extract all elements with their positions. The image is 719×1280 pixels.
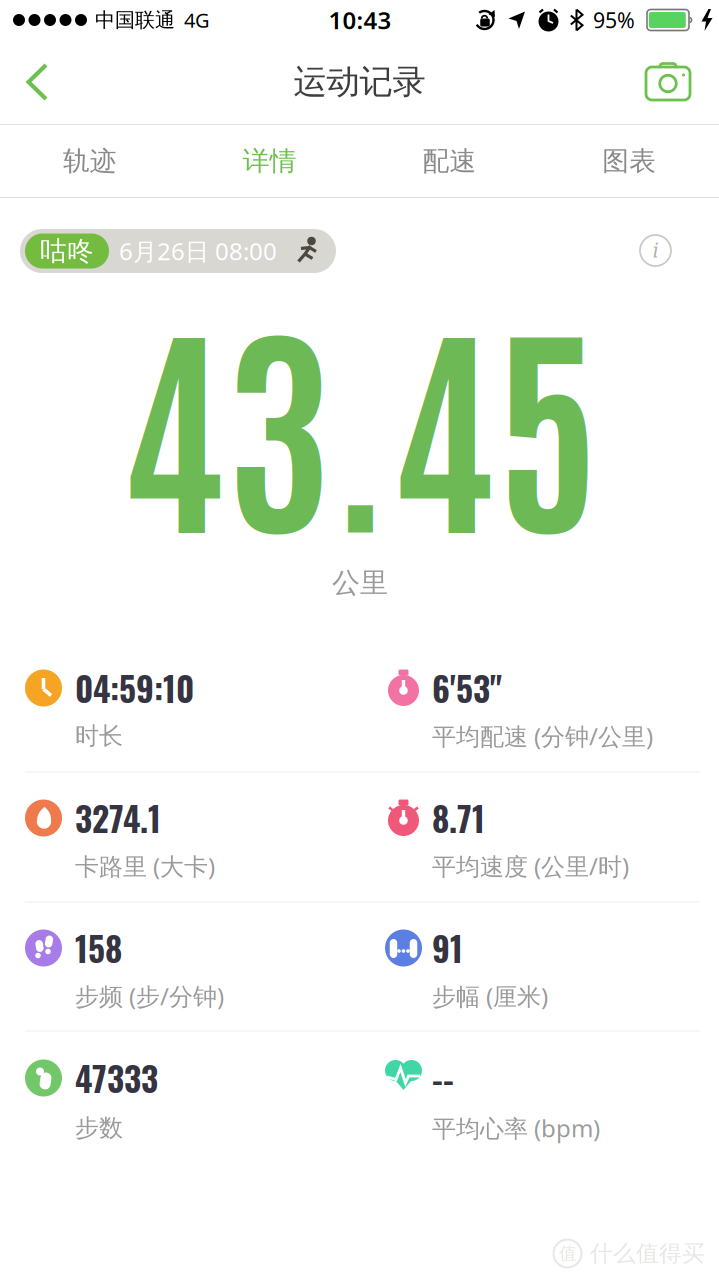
button[interactable]: 信息 — [638, 233, 672, 267]
staticText: 3274.1 — [75, 793, 161, 843]
staticText: 4G — [184, 7, 210, 33]
staticText: -- — [432, 1053, 454, 1103]
button[interactable]: 详情 — [180, 125, 360, 197]
staticText: 值 — [559, 1243, 576, 1264]
staticText: 步频 (步/分钟) — [75, 980, 224, 1012]
staticText: 平均心率 (bpm) — [432, 1112, 600, 1144]
staticText: 中国联通 — [95, 8, 175, 32]
staticText: 8.71 — [432, 793, 485, 843]
staticText: 平均速度 (公里/时) — [432, 850, 629, 882]
staticText: 158 — [75, 923, 122, 973]
staticText: 图表 — [602, 145, 656, 177]
button[interactable]: 轨迹 — [0, 125, 180, 197]
button[interactable]: 相机 — [644, 62, 692, 102]
button[interactable]: 配速 — [359, 125, 539, 197]
staticText: 什么值得买 — [590, 1240, 705, 1267]
staticText: 6'53" — [432, 663, 502, 713]
staticText: 轨迹 — [63, 145, 117, 177]
button[interactable]: 返回 — [25, 62, 50, 102]
staticText: 运动记录 — [293, 61, 425, 102]
staticText: 04:59:10 — [75, 663, 194, 713]
staticText: 47333 — [75, 1053, 158, 1103]
staticText: 10:43 — [328, 4, 391, 36]
staticText: 平均配速 (分钟/公里) — [432, 720, 653, 752]
staticText: 时长 — [75, 721, 123, 751]
staticText: i — [652, 239, 658, 262]
staticText: 卡路里 (大卡) — [75, 850, 215, 882]
staticText: 咕咚 — [40, 235, 94, 267]
button[interactable]: 咕咚 6月26日 08:00 — [20, 229, 336, 273]
staticText: 步数 — [75, 1113, 123, 1143]
staticText: 步幅 (厘米) — [432, 980, 548, 1012]
button[interactable]: 图表 — [539, 125, 719, 197]
staticText: 6月26日 08:00 — [119, 235, 277, 267]
staticText: 43.45 — [120, 271, 600, 564]
staticText: 91 — [432, 923, 463, 973]
staticText: 公里 — [332, 566, 388, 600]
staticText: 详情 — [243, 145, 297, 177]
staticText: 配速 — [422, 145, 476, 177]
staticText: 95% — [593, 6, 635, 34]
